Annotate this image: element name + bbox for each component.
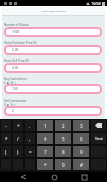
button[interactable]: 3	[73, 120, 89, 131]
button[interactable]: 5	[55, 133, 71, 144]
staticText: .	[29, 123, 31, 129]
button[interactable]: 2	[4, 106, 102, 116]
staticText: -	[5, 123, 7, 129]
staticText: 2	[62, 123, 65, 129]
button[interactable]: 0	[55, 159, 71, 170]
staticText: 1000	[12, 30, 20, 34]
button[interactable]: Home	[46, 172, 62, 182]
button[interactable]: 4.00	[4, 63, 102, 73]
button[interactable]: 2	[55, 120, 71, 131]
button[interactable]: 100	[4, 84, 102, 94]
staticText: 7	[44, 149, 47, 155]
button[interactable]: 8	[55, 146, 71, 157]
staticText: =	[29, 149, 32, 155]
staticText: Share Sell Price ($)	[4, 59, 29, 63]
staticText: 10:58	[91, 1, 101, 6]
button[interactable]: 7	[37, 146, 53, 157]
button[interactable]: #	[73, 159, 89, 170]
staticText: 4	[44, 136, 47, 142]
button[interactable]: 1	[37, 120, 53, 131]
button[interactable]: Next	[91, 133, 106, 144]
staticText: Share Purchase Price ($)	[4, 41, 37, 45]
staticText: 3	[80, 123, 83, 129]
staticText: 2.00	[12, 48, 19, 52]
button[interactable]: *	[37, 159, 53, 170]
staticText: 4.00	[12, 66, 19, 70]
staticText: *	[5, 136, 8, 142]
staticText: $ ◉ % ○	[4, 81, 17, 85]
staticText: 8	[62, 149, 65, 155]
button[interactable]: ,	[25, 133, 35, 144]
button[interactable]: Recents	[76, 172, 92, 182]
button[interactable]: 9	[73, 146, 89, 157]
button[interactable]	[91, 120, 106, 131]
staticText: Number of Shares	[4, 23, 29, 27]
staticText: $ ◉ % ○	[4, 103, 17, 107]
staticText: Next	[95, 136, 103, 141]
button[interactable]: .	[25, 120, 35, 131]
button[interactable]: Back	[15, 172, 31, 182]
staticText: /	[17, 136, 19, 142]
button[interactable]: *	[1, 133, 11, 144]
staticText: *	[44, 162, 47, 168]
staticText: Stock Profit Calculator	[42, 10, 66, 13]
button[interactable]: +	[13, 120, 23, 131]
button[interactable]: /	[13, 133, 23, 144]
staticText: ,	[29, 136, 31, 142]
staticText: 2	[12, 109, 14, 113]
staticText: Buy Commission	[4, 77, 27, 81]
staticText: 100	[12, 87, 18, 91]
button[interactable]: 6	[73, 133, 89, 144]
button[interactable]: (	[1, 146, 11, 157]
button[interactable]: 1000	[4, 27, 102, 37]
staticText: Sell Commission	[4, 99, 27, 103]
staticText: 5	[62, 136, 65, 142]
staticText: )	[17, 149, 19, 155]
button[interactable]: )	[13, 146, 23, 157]
button[interactable]: 2.00	[4, 45, 102, 55]
staticText: 9	[80, 149, 83, 155]
button[interactable]: 4	[37, 133, 53, 144]
staticText: 6	[80, 136, 83, 142]
button[interactable]: -	[1, 120, 11, 131]
staticText: 1	[44, 123, 47, 129]
staticText: +	[17, 123, 20, 129]
staticText: (	[5, 149, 7, 155]
staticText: 0	[62, 162, 65, 168]
staticText: #	[80, 162, 83, 168]
button[interactable]: =	[25, 146, 35, 157]
